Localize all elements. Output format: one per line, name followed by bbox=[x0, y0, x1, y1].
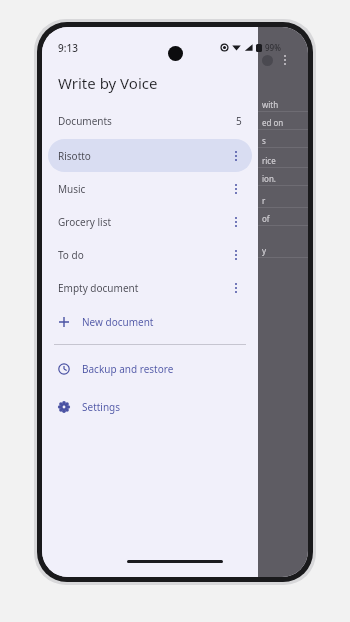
button[interactable]: More options for To do bbox=[226, 245, 246, 265]
button[interactable]: Settings bbox=[42, 393, 258, 421]
staticText: rice bbox=[262, 155, 276, 166]
button[interactable]: Risotto bbox=[48, 139, 252, 172]
staticText: Write by Voice bbox=[58, 73, 158, 93]
staticText: ion. bbox=[262, 173, 276, 184]
staticText: New document bbox=[82, 315, 154, 329]
button[interactable]: More options for Risotto bbox=[226, 146, 246, 166]
staticText: Grocery list bbox=[58, 215, 112, 229]
staticText: Empty document bbox=[58, 281, 139, 295]
staticText: Music bbox=[58, 182, 86, 196]
button[interactable]: To do bbox=[48, 238, 252, 271]
staticText: 99% bbox=[265, 42, 281, 53]
staticText: Risotto bbox=[58, 149, 91, 163]
button[interactable]: More options for Music bbox=[226, 179, 246, 199]
staticText: Settings bbox=[82, 400, 121, 414]
staticText: Backup and restore bbox=[82, 362, 174, 376]
button[interactable]: Music bbox=[48, 172, 252, 205]
staticText: s bbox=[262, 135, 266, 146]
button[interactable]: More options for Grocery list bbox=[226, 212, 246, 232]
staticText: Documents bbox=[58, 114, 112, 128]
staticText: To do bbox=[58, 248, 84, 262]
button[interactable]: New document bbox=[42, 308, 258, 336]
staticText: r bbox=[262, 195, 266, 206]
staticText: with bbox=[262, 99, 279, 110]
staticText: 9:13 bbox=[58, 41, 78, 55]
button[interactable]: Backup and restore bbox=[42, 355, 258, 383]
staticText: ed on bbox=[262, 117, 284, 128]
staticText: y bbox=[262, 245, 267, 256]
staticText: 5 bbox=[236, 114, 242, 128]
button[interactable]: Empty document bbox=[48, 271, 252, 304]
staticText: of bbox=[262, 213, 270, 224]
button[interactable]: More options for Empty document bbox=[226, 278, 246, 298]
button[interactable]: Grocery list bbox=[48, 205, 252, 238]
